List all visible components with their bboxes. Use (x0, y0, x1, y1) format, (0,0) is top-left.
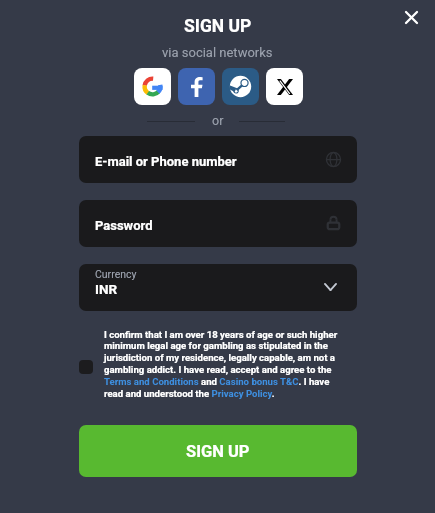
button[interactable]: Close (396, 2, 426, 32)
staticText: Currency (95, 268, 137, 280)
button[interactable]: Password (79, 200, 357, 247)
staticText: I confirm that I am over 18 years of age… (104, 329, 350, 400)
button[interactable]: Sign up with X (266, 68, 303, 105)
button[interactable]: Select currency (79, 264, 357, 311)
button[interactable]: Sign up with Steam (222, 68, 259, 105)
staticText: SIGN UP (186, 442, 250, 461)
button[interactable]: Accept terms and conditions (79, 360, 93, 374)
button[interactable]: Sign up with Facebook (178, 68, 215, 105)
staticText: via social networks (162, 45, 273, 60)
button[interactable]: Sign up with Google (134, 68, 171, 105)
button[interactable]: SIGN UP (79, 425, 357, 477)
button[interactable]: E-mail or Phone number (79, 136, 357, 183)
staticText: INR (95, 281, 118, 297)
staticText: E-mail or Phone number (95, 154, 237, 169)
staticText: SIGN UP (184, 16, 252, 37)
staticText: Password (95, 218, 153, 233)
staticText: or (212, 113, 224, 128)
